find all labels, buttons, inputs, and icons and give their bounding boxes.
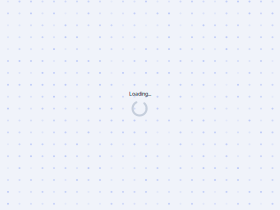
staticText: Loading... xyxy=(129,90,151,97)
